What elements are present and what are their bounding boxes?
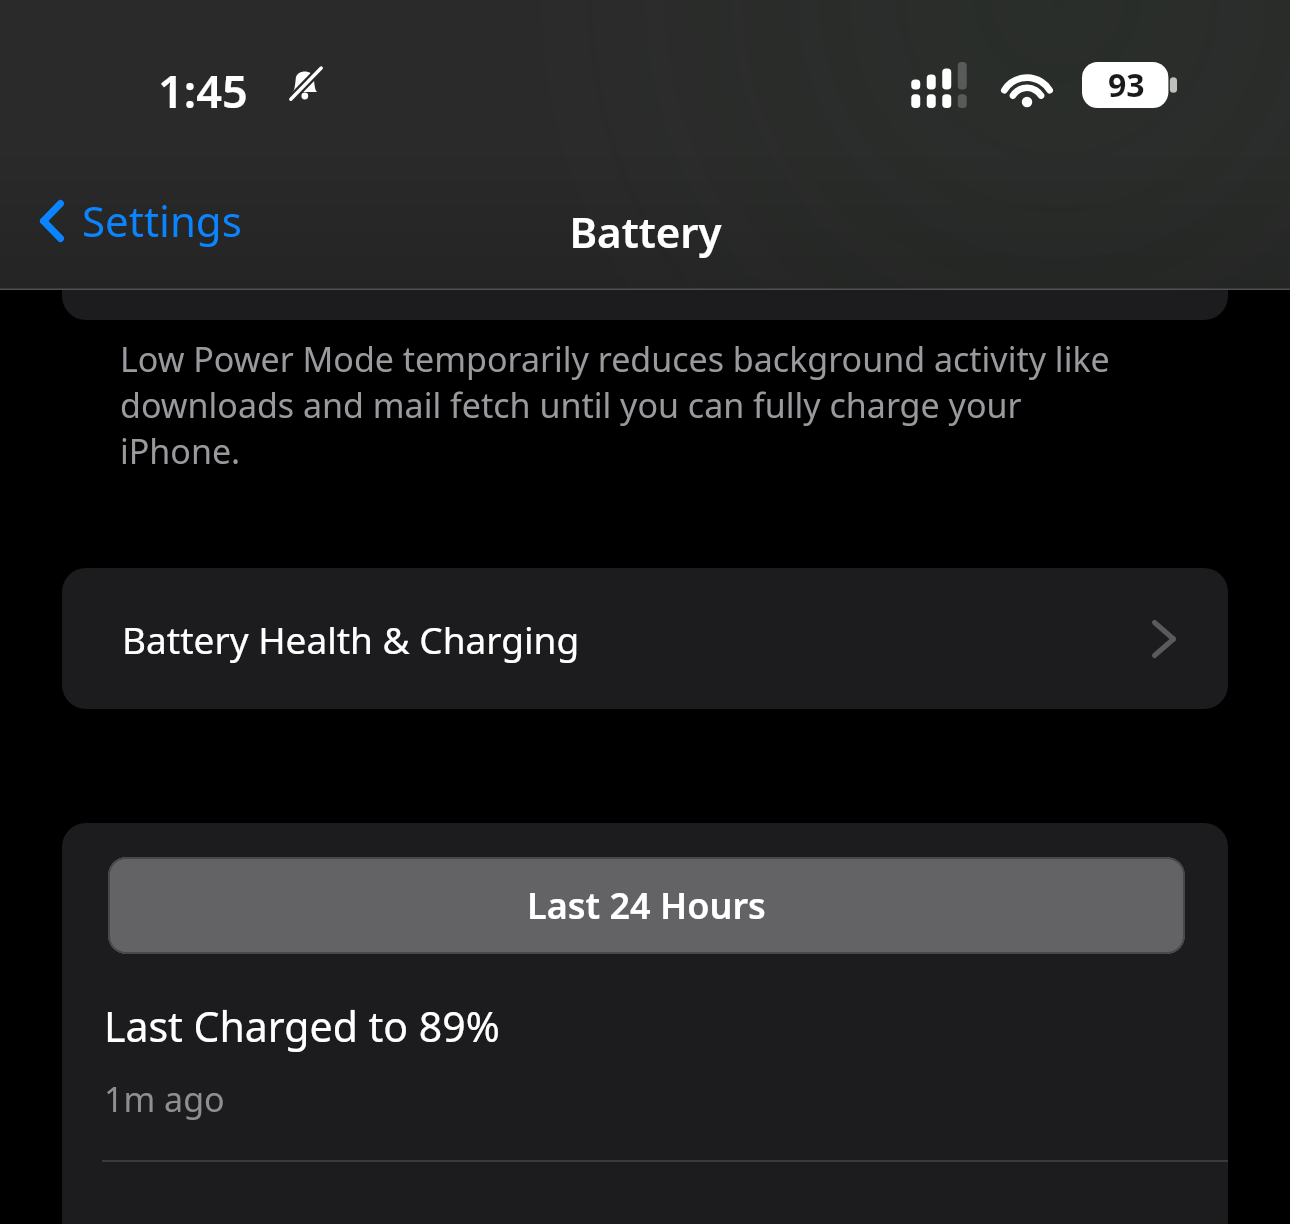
staticText: 1m ago — [104, 1076, 225, 1122]
button[interactable]: Settings — [28, 186, 254, 255]
staticText: 93 — [1108, 63, 1145, 107]
button[interactable]: Battery Health & Charging — [62, 568, 1228, 709]
staticText: 1:45 — [158, 60, 248, 121]
staticText: Low Power Mode temporarily reduces backg… — [120, 336, 1110, 382]
other: Battery 93 percent — [1082, 62, 1178, 108]
staticText: Last Charged to 89% — [104, 998, 500, 1054]
button[interactable] — [62, 230, 1228, 320]
other: Silent mode — [286, 64, 326, 104]
button[interactable]: Last 24 Hours — [108, 857, 1185, 954]
staticText: iPhone. — [120, 428, 241, 474]
staticText: downloads and mail fetch until you can f… — [120, 382, 1022, 428]
staticText: Battery Health & Charging — [122, 614, 1152, 664]
staticText: Settings — [82, 192, 242, 249]
staticText: Last 24 Hours — [527, 881, 766, 930]
other: Cellular signal — [908, 62, 970, 108]
other: Wi-Fi — [998, 64, 1056, 106]
staticText: Battery — [569, 203, 722, 260]
